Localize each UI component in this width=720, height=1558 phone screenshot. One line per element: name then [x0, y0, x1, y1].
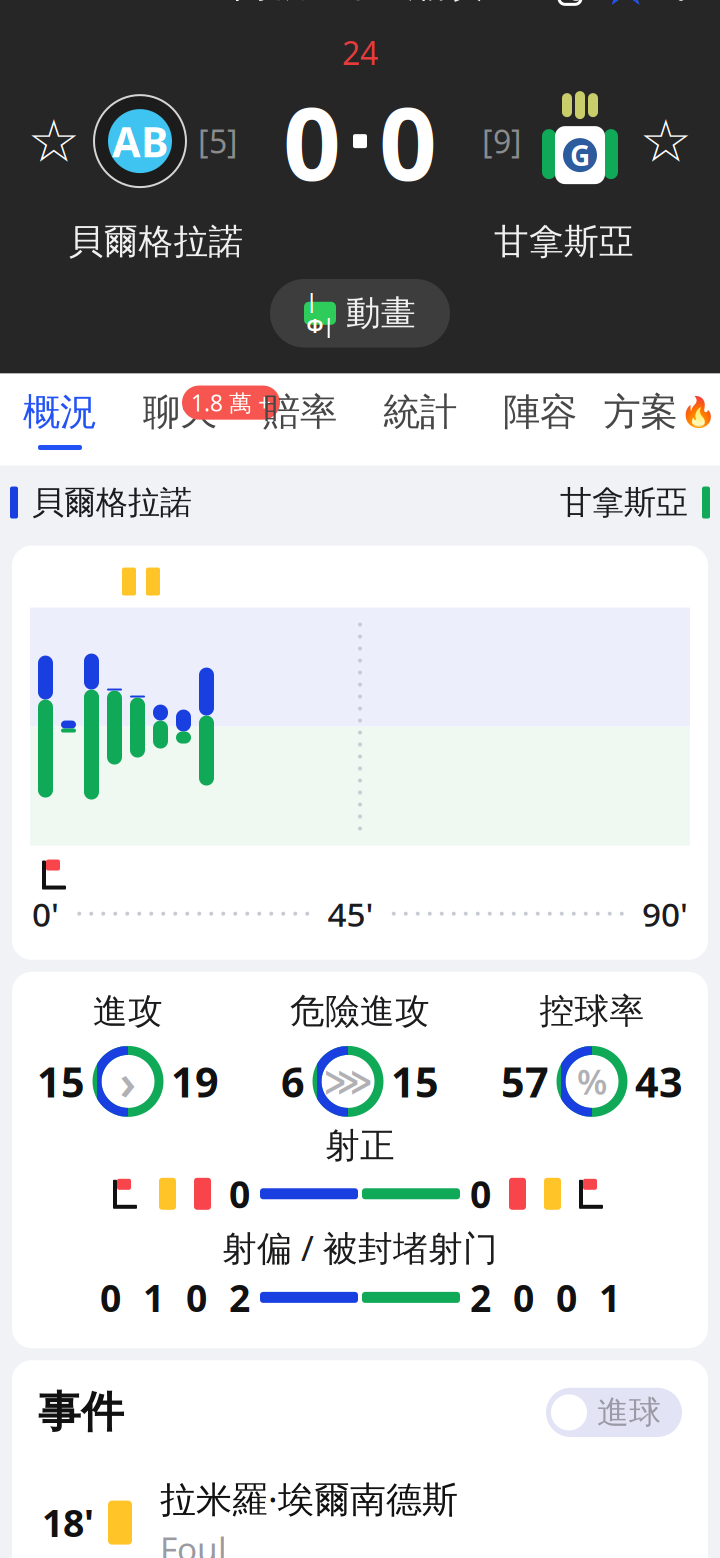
button[interactable]: Favorite Gimnasia	[630, 105, 702, 177]
staticText: 動畫	[346, 292, 416, 335]
staticText: 🔥	[679, 395, 716, 429]
staticText: 0'	[32, 892, 59, 936]
button[interactable]: 統計	[360, 374, 480, 466]
staticText: 賠率	[263, 389, 337, 435]
staticText: 聊天	[143, 389, 217, 435]
staticText: 危險進攻	[290, 990, 430, 1032]
staticText: 90'	[642, 892, 688, 936]
staticText: 貝爾格拉諾	[68, 220, 243, 263]
staticText: 0	[379, 74, 437, 208]
staticText: 甘拿斯亞	[560, 483, 688, 522]
staticText: 貝爾格拉諾	[32, 483, 192, 522]
staticText: 15	[37, 1054, 85, 1109]
staticText: 1	[143, 1273, 164, 1322]
staticText: 2	[229, 1273, 250, 1322]
staticText: 統計	[383, 389, 457, 435]
button[interactable]: More options	[654, 0, 708, 19]
staticText: 進攻	[93, 990, 163, 1032]
staticText: ☆	[27, 108, 80, 174]
staticText: 18'	[42, 1498, 94, 1547]
button[interactable]: Add to favorites	[598, 0, 654, 19]
staticText: ☆	[639, 108, 692, 174]
staticText: 進球	[597, 1393, 661, 1432]
staticText: 0	[100, 1273, 121, 1322]
staticText: 陣容	[503, 389, 577, 435]
staticText: G	[570, 136, 590, 174]
staticText: 1.8 萬 +	[191, 388, 271, 418]
staticText: 0	[470, 1169, 491, 1219]
staticText: |Φ|	[306, 288, 333, 338]
staticText: ☆	[599, 0, 652, 18]
staticText: 概況	[23, 389, 97, 435]
staticText: 0	[513, 1273, 534, 1322]
staticText: 2	[470, 1273, 491, 1322]
staticText: [9]	[482, 120, 522, 162]
staticText: 拉米羅·埃爾南德斯	[160, 1475, 458, 1522]
staticText: ⋙	[323, 1062, 372, 1101]
staticText: 0	[186, 1273, 207, 1322]
staticText: AB	[112, 114, 168, 169]
staticText: ›	[119, 1049, 136, 1113]
staticText: 19	[171, 1054, 219, 1109]
staticText: 15	[391, 1054, 439, 1109]
staticText: Foul	[160, 1526, 227, 1558]
button[interactable]: |Φ|	[270, 279, 450, 348]
staticText: 阿根廷甲級聯賽	[234, 0, 486, 6]
staticText: 1	[599, 1273, 620, 1322]
staticText: 0	[283, 74, 341, 208]
staticText: 57	[501, 1054, 549, 1109]
staticText: 事件	[38, 1386, 124, 1439]
button[interactable]: 方案	[600, 374, 720, 466]
staticText: [5]	[198, 120, 238, 162]
button[interactable]: 聊天	[120, 374, 240, 466]
button[interactable]: 進球	[546, 1388, 682, 1437]
button[interactable]: 賠率	[240, 374, 360, 466]
staticText: 6	[281, 1054, 305, 1109]
staticText: %	[577, 1058, 607, 1104]
button[interactable]: Cast to device	[542, 0, 598, 19]
staticText: 方案	[603, 389, 677, 435]
staticText: 射正	[325, 1124, 395, 1167]
staticText: 控球率	[539, 990, 644, 1032]
staticText: 0	[556, 1273, 577, 1322]
staticText: 射偏 / 被封堵射门	[222, 1225, 498, 1271]
staticText: 43	[635, 1054, 683, 1109]
staticText: 甘拿斯亞	[494, 220, 634, 263]
staticText: 0	[229, 1169, 250, 1219]
button[interactable]: 概況	[0, 374, 120, 466]
button[interactable]: Favorite Belgrano	[18, 105, 90, 177]
staticText: 45'	[327, 892, 373, 936]
button[interactable]: 陣容	[480, 374, 600, 466]
staticText: 24	[342, 31, 378, 74]
